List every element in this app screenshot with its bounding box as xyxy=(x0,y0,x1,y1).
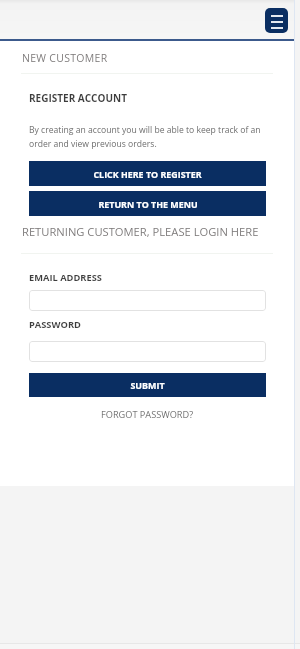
button[interactable]: SUBMIT xyxy=(29,373,266,397)
button[interactable]: RETURN TO THE MENU xyxy=(29,191,266,216)
staticText: EMAIL ADDRESS xyxy=(29,271,102,284)
staticText: NEW CUSTOMER xyxy=(22,51,108,65)
button[interactable]: Menu xyxy=(265,8,288,33)
staticText: RETURNING CUSTOMER, PLEASE LOGIN HERE xyxy=(22,224,259,239)
staticText: By creating an account you will be able … xyxy=(29,124,269,149)
button[interactable] xyxy=(29,290,266,311)
staticText: PASSWORD xyxy=(29,318,81,331)
button[interactable] xyxy=(29,341,266,362)
staticText: CLICK HERE TO REGISTER xyxy=(93,168,202,180)
staticText: FORGOT PASSWORD? xyxy=(101,408,194,421)
staticText: RETURN TO THE MENU xyxy=(98,198,198,210)
staticText: REGISTER ACCOUNT xyxy=(29,91,127,105)
staticText: SUBMIT xyxy=(130,379,165,391)
button[interactable]: CLICK HERE TO REGISTER xyxy=(29,161,266,186)
button[interactable]: FORGOT PASSWORD? xyxy=(29,407,266,421)
